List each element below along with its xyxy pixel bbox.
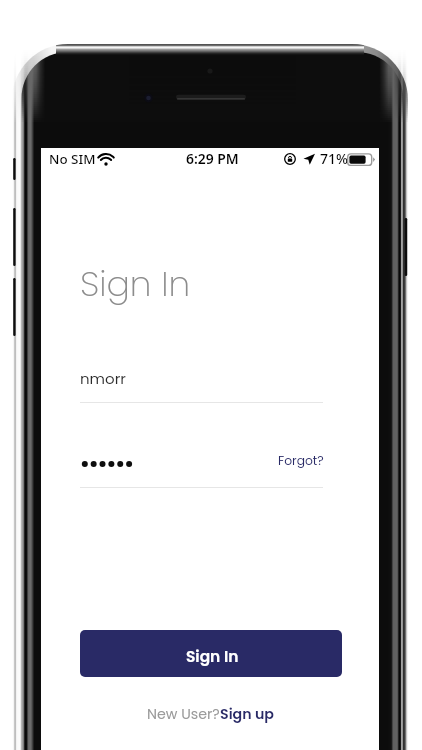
button[interactable]: Forgot? (276, 450, 326, 471)
staticText: No SIM (49, 150, 96, 168)
staticText: 71% (320, 149, 348, 168)
staticText: Sign up (220, 704, 274, 724)
button[interactable]: Sign In (80, 630, 342, 677)
staticText: 6:29 PM (186, 149, 239, 168)
staticText: Sign In (80, 260, 191, 309)
staticText: Forgot? (278, 452, 324, 469)
staticText: New User? (147, 704, 220, 724)
button[interactable]: New User? (41, 704, 379, 724)
staticText: Sign In (186, 646, 239, 668)
staticText: nmorr (80, 368, 126, 389)
